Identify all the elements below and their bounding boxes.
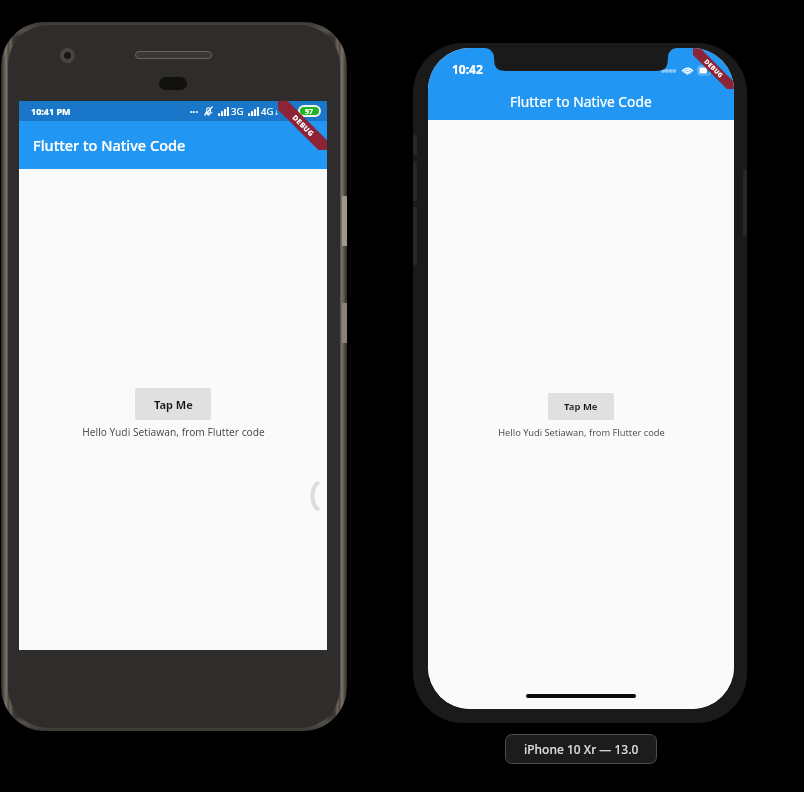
staticText: iPhone 10 Xr — 13.0 xyxy=(524,741,639,757)
other: Mobile signal xyxy=(248,107,259,116)
staticText: DEBUG xyxy=(703,58,725,80)
other: Wi-Fi signal xyxy=(681,64,694,77)
staticText: Hello Yudi Setiawan, from Flutter code xyxy=(82,425,265,439)
button[interactable]: 10:42 xyxy=(428,48,734,120)
staticText: 10:42 xyxy=(452,61,483,77)
other: Wi-Fi signal xyxy=(283,105,295,117)
other: Mobile signal xyxy=(218,107,229,116)
staticText: 97 xyxy=(305,107,314,115)
other: Silent mode xyxy=(204,106,213,116)
button[interactable]: Flutter to Native Code xyxy=(19,121,327,169)
staticText: Flutter to Native Code xyxy=(33,135,186,155)
staticText: DEBUG xyxy=(290,113,316,139)
staticText: ... xyxy=(190,102,199,116)
other: Cellular signal xyxy=(661,69,676,73)
staticText: Tap Me xyxy=(564,400,598,413)
other: Battery xyxy=(698,66,712,75)
staticText: 3G xyxy=(231,105,244,118)
staticText: Flutter to Native Code xyxy=(510,92,652,111)
staticText: Tap Me xyxy=(154,397,193,412)
staticText: 10:41 PM xyxy=(31,105,71,117)
staticText: ↓ xyxy=(274,109,280,116)
staticText: Hello Yudi Setiawan, from Flutter code xyxy=(498,426,665,439)
button[interactable]: Tap Me xyxy=(548,393,614,420)
button[interactable]: iPhone 10 Xr — 13.0 xyxy=(505,734,657,764)
button[interactable]: Tap Me xyxy=(135,388,211,420)
staticText: 4G xyxy=(261,105,274,118)
